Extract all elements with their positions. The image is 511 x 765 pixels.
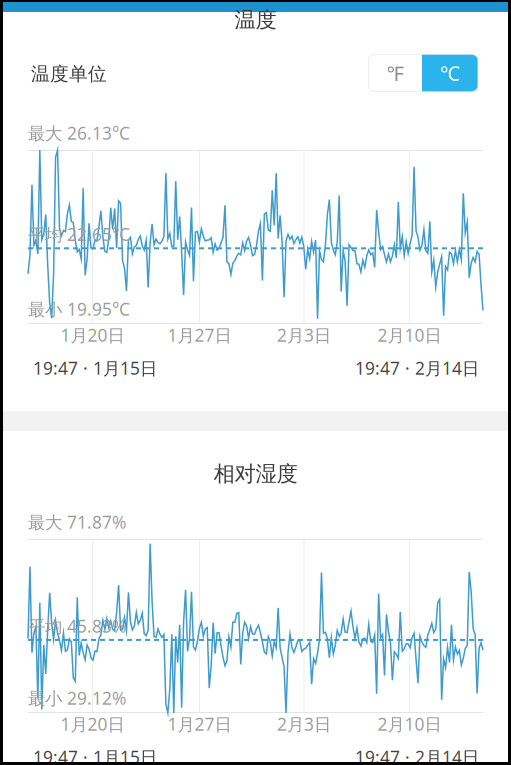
staticText: 1月20日	[60, 323, 124, 346]
staticText: 1月27日	[167, 323, 231, 346]
staticText: 最大 71.87%	[28, 510, 126, 533]
staticText: 相对湿度	[213, 461, 297, 487]
staticText: 2月10日	[377, 323, 441, 346]
staticText: 2月3日	[277, 323, 331, 346]
staticText: 平均 45.83%	[28, 614, 126, 637]
staticText: 温度单位	[31, 62, 107, 85]
staticText: ℃	[440, 60, 460, 86]
staticText: 19:47 · 2月14日	[355, 745, 479, 765]
staticText: 最小 29.12%	[28, 686, 126, 709]
button[interactable]: ℉	[368, 54, 478, 91]
staticText: 2月3日	[277, 712, 331, 735]
staticText: 19:47 · 1月15日	[33, 745, 157, 765]
staticText: 2月10日	[377, 712, 441, 735]
staticText: ℉	[386, 60, 403, 86]
staticText: 最大 26.13°C	[28, 121, 130, 144]
staticText: 19:47 · 1月15日	[33, 356, 157, 379]
staticText: 温度	[234, 7, 276, 33]
staticText: 1月20日	[60, 712, 124, 735]
staticText: 1月27日	[167, 712, 231, 735]
staticText: 平均 22.65°C	[28, 223, 130, 246]
staticText: 最小 19.95°C	[28, 297, 130, 320]
staticText: 19:47 · 2月14日	[355, 356, 479, 379]
